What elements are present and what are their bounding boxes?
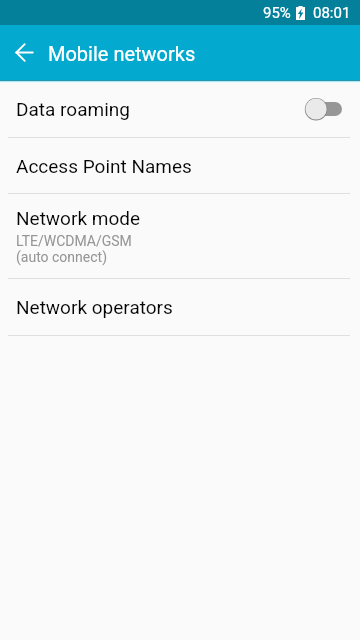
staticText: Data roaming <box>16 98 130 120</box>
button[interactable]: Access Point Names <box>0 138 360 193</box>
staticText: Access Point Names <box>16 155 192 177</box>
staticText: (auto connect) <box>16 249 108 265</box>
other: Battery charging, 95 percent <box>296 6 305 20</box>
button[interactable]: Network operators <box>0 279 360 335</box>
staticText: Mobile networks <box>48 42 196 65</box>
button[interactable]: Navigate up <box>4 32 45 73</box>
staticText: Network mode <box>16 207 141 229</box>
button[interactable]: Network mode <box>0 194 360 278</box>
button[interactable]: Data roaming off <box>305 97 343 121</box>
button[interactable]: Data roaming <box>0 80 360 137</box>
staticText: Network operators <box>16 296 173 318</box>
staticText: 95% <box>263 4 291 22</box>
staticText: LTE/WCDMA/GSM <box>16 233 132 249</box>
staticText: 08:01 <box>313 4 351 22</box>
